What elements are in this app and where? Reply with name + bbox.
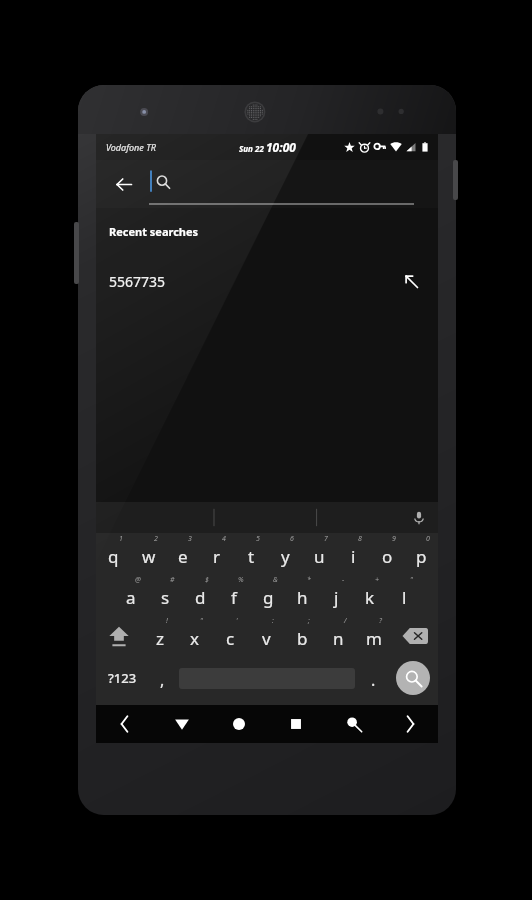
staticText: & xyxy=(273,575,278,585)
staticText: a xyxy=(126,586,136,609)
button[interactable]: @ xyxy=(113,574,148,615)
button[interactable]: Next xyxy=(381,705,438,743)
staticText: d xyxy=(195,586,206,609)
button[interactable]: Recents xyxy=(267,705,324,743)
button[interactable]: ' xyxy=(212,615,248,656)
staticText: ?123 xyxy=(108,669,137,687)
staticText: ' xyxy=(236,616,238,626)
button[interactable]: $ xyxy=(183,574,217,615)
button[interactable]: 8 xyxy=(336,533,370,574)
staticText: / xyxy=(344,616,347,626)
button[interactable]: & xyxy=(251,574,285,615)
staticText: 4 xyxy=(222,534,226,544)
button[interactable]: ! xyxy=(142,615,177,656)
button[interactable]: 6 xyxy=(268,533,302,574)
staticText: r xyxy=(213,545,221,568)
staticText: , xyxy=(160,669,165,691)
button[interactable]: : xyxy=(248,615,284,656)
staticText: ! xyxy=(166,616,168,626)
staticText: : xyxy=(272,616,274,626)
staticText: . xyxy=(371,669,376,691)
button[interactable]: * xyxy=(285,574,319,615)
button[interactable]: Voice input xyxy=(406,505,432,531)
button[interactable]: Home xyxy=(210,705,267,743)
staticText: y xyxy=(281,545,290,568)
button[interactable]: " xyxy=(387,574,421,615)
button[interactable]: / xyxy=(320,615,356,656)
staticText: # xyxy=(170,575,175,585)
button[interactable]: . xyxy=(358,656,388,700)
staticText: * xyxy=(307,575,311,585)
button[interactable]: - xyxy=(319,574,353,615)
button[interactable]: 3 xyxy=(166,533,200,574)
button[interactable]: 7 xyxy=(302,533,336,574)
staticText: n xyxy=(333,627,344,650)
button[interactable]: 0 xyxy=(404,533,438,574)
staticText: 3 xyxy=(188,534,192,544)
staticText: q xyxy=(108,545,119,568)
staticText: % xyxy=(238,575,244,585)
button[interactable]: Shift xyxy=(96,615,142,656)
staticText: 9 xyxy=(392,534,396,544)
staticText: o xyxy=(382,545,393,568)
staticText: 0 xyxy=(426,534,430,544)
staticText: @ xyxy=(135,575,141,585)
button[interactable]: Previous xyxy=(96,705,153,743)
staticText: k xyxy=(365,586,375,609)
staticText: e xyxy=(178,545,188,568)
button[interactable] xyxy=(149,160,414,208)
staticText: f xyxy=(231,586,237,609)
staticText: 7 xyxy=(324,534,328,544)
button[interactable]: # xyxy=(148,574,183,615)
staticText: + xyxy=(375,575,380,585)
staticText: i xyxy=(351,545,356,568)
staticText: 5567735 xyxy=(109,272,166,291)
staticText: " xyxy=(410,575,413,585)
staticText: m xyxy=(366,627,382,650)
button[interactable]: Back xyxy=(153,705,210,743)
staticText: b xyxy=(297,627,308,650)
button[interactable]: + xyxy=(353,574,387,615)
staticText: c xyxy=(226,627,235,650)
staticText: j xyxy=(334,586,339,609)
staticText: $ xyxy=(205,575,209,585)
button[interactable]: Insert query xyxy=(396,266,426,296)
button[interactable]: 4 xyxy=(200,533,234,574)
staticText: Vodafone TR xyxy=(106,141,156,153)
button[interactable]: ? xyxy=(356,615,392,656)
staticText: s xyxy=(161,586,170,609)
staticText: p xyxy=(416,545,427,568)
button[interactable]: ?123 xyxy=(96,656,148,700)
staticText: h xyxy=(297,586,308,609)
button[interactable]: " xyxy=(177,615,212,656)
staticText: 5 xyxy=(256,534,260,544)
staticText: w xyxy=(142,545,156,568)
button[interactable]: % xyxy=(217,574,251,615)
button[interactable]: Delete xyxy=(392,615,438,656)
button[interactable]: ; xyxy=(284,615,320,656)
button[interactable]: Back xyxy=(102,163,144,205)
staticText: v xyxy=(262,627,271,650)
staticText: - xyxy=(342,575,345,585)
staticText: Sun 22 xyxy=(239,143,266,154)
button[interactable]: 5567735 xyxy=(96,261,438,301)
staticText: Recent searches xyxy=(109,224,199,239)
staticText: 10:00 xyxy=(266,139,296,155)
staticText: 1 xyxy=(119,534,123,544)
staticText: 6 xyxy=(290,534,294,544)
button[interactable]: 5 xyxy=(234,533,268,574)
button[interactable]: , xyxy=(148,656,176,700)
staticText: g xyxy=(263,586,274,609)
staticText: x xyxy=(190,627,199,650)
staticText: z xyxy=(156,627,164,650)
button[interactable]: Search xyxy=(324,705,381,743)
button[interactable]: 2 xyxy=(131,533,166,574)
staticText: ; xyxy=(308,616,310,626)
staticText: 8 xyxy=(358,534,362,544)
staticText: " xyxy=(200,616,203,626)
staticText: l xyxy=(402,586,407,609)
button[interactable]: 9 xyxy=(370,533,404,574)
button[interactable]: 1 xyxy=(96,533,131,574)
button[interactable]: Search xyxy=(396,661,430,695)
